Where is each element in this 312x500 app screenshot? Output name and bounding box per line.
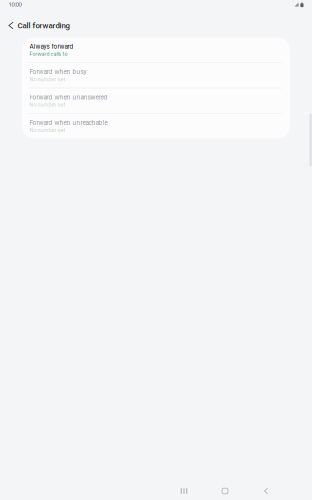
button[interactable]: Forward when busy bbox=[22, 63, 290, 88]
staticText: Forward when unreachable bbox=[29, 119, 107, 126]
button[interactable]: Back bbox=[245, 481, 286, 500]
button[interactable]: Recent apps bbox=[163, 481, 204, 500]
staticText: Forward when unanswered bbox=[29, 94, 107, 101]
staticText: Forward calls to bbox=[29, 51, 67, 57]
staticText: Call forwarding bbox=[17, 21, 69, 30]
button[interactable]: Always forward bbox=[22, 38, 290, 62]
staticText: 10:00 bbox=[8, 1, 21, 8]
button[interactable]: Back bbox=[4, 15, 17, 35]
button[interactable]: Forward when unanswered bbox=[22, 88, 290, 113]
staticText: Forward when busy bbox=[29, 68, 86, 76]
staticText: No number set bbox=[29, 127, 65, 133]
staticText: No number set bbox=[29, 76, 65, 82]
button[interactable]: Home bbox=[204, 481, 245, 500]
button[interactable]: Forward when unreachable bbox=[22, 114, 290, 138]
staticText: No number set bbox=[29, 102, 65, 108]
staticText: Always forward bbox=[29, 43, 73, 50]
